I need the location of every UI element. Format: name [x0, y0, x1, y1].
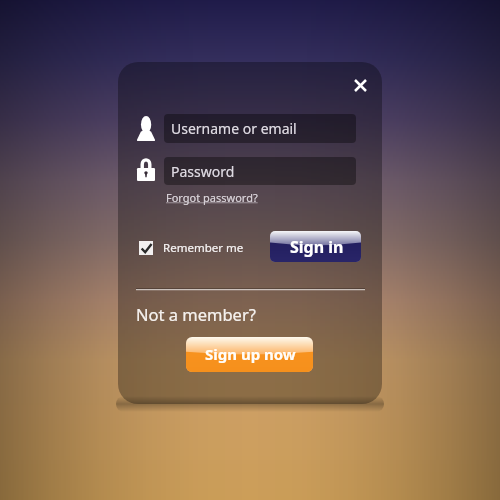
button[interactable]: Sign up now	[186, 337, 313, 372]
staticText: Password	[171, 162, 235, 181]
staticText: Sign up now	[205, 344, 296, 364]
button[interactable]: Remember me	[139, 240, 244, 256]
button[interactable]: Username or email	[164, 114, 356, 143]
button[interactable]: Password	[164, 157, 356, 185]
button[interactable]: Sign in	[270, 231, 361, 262]
button[interactable]: Close	[344, 69, 376, 101]
staticText: Username or email	[171, 119, 297, 138]
staticText: Sign in	[290, 236, 344, 258]
staticText: Remember me	[163, 240, 244, 256]
button[interactable]: Forgot password?	[166, 190, 258, 205]
staticText: Not a member?	[136, 303, 256, 325]
